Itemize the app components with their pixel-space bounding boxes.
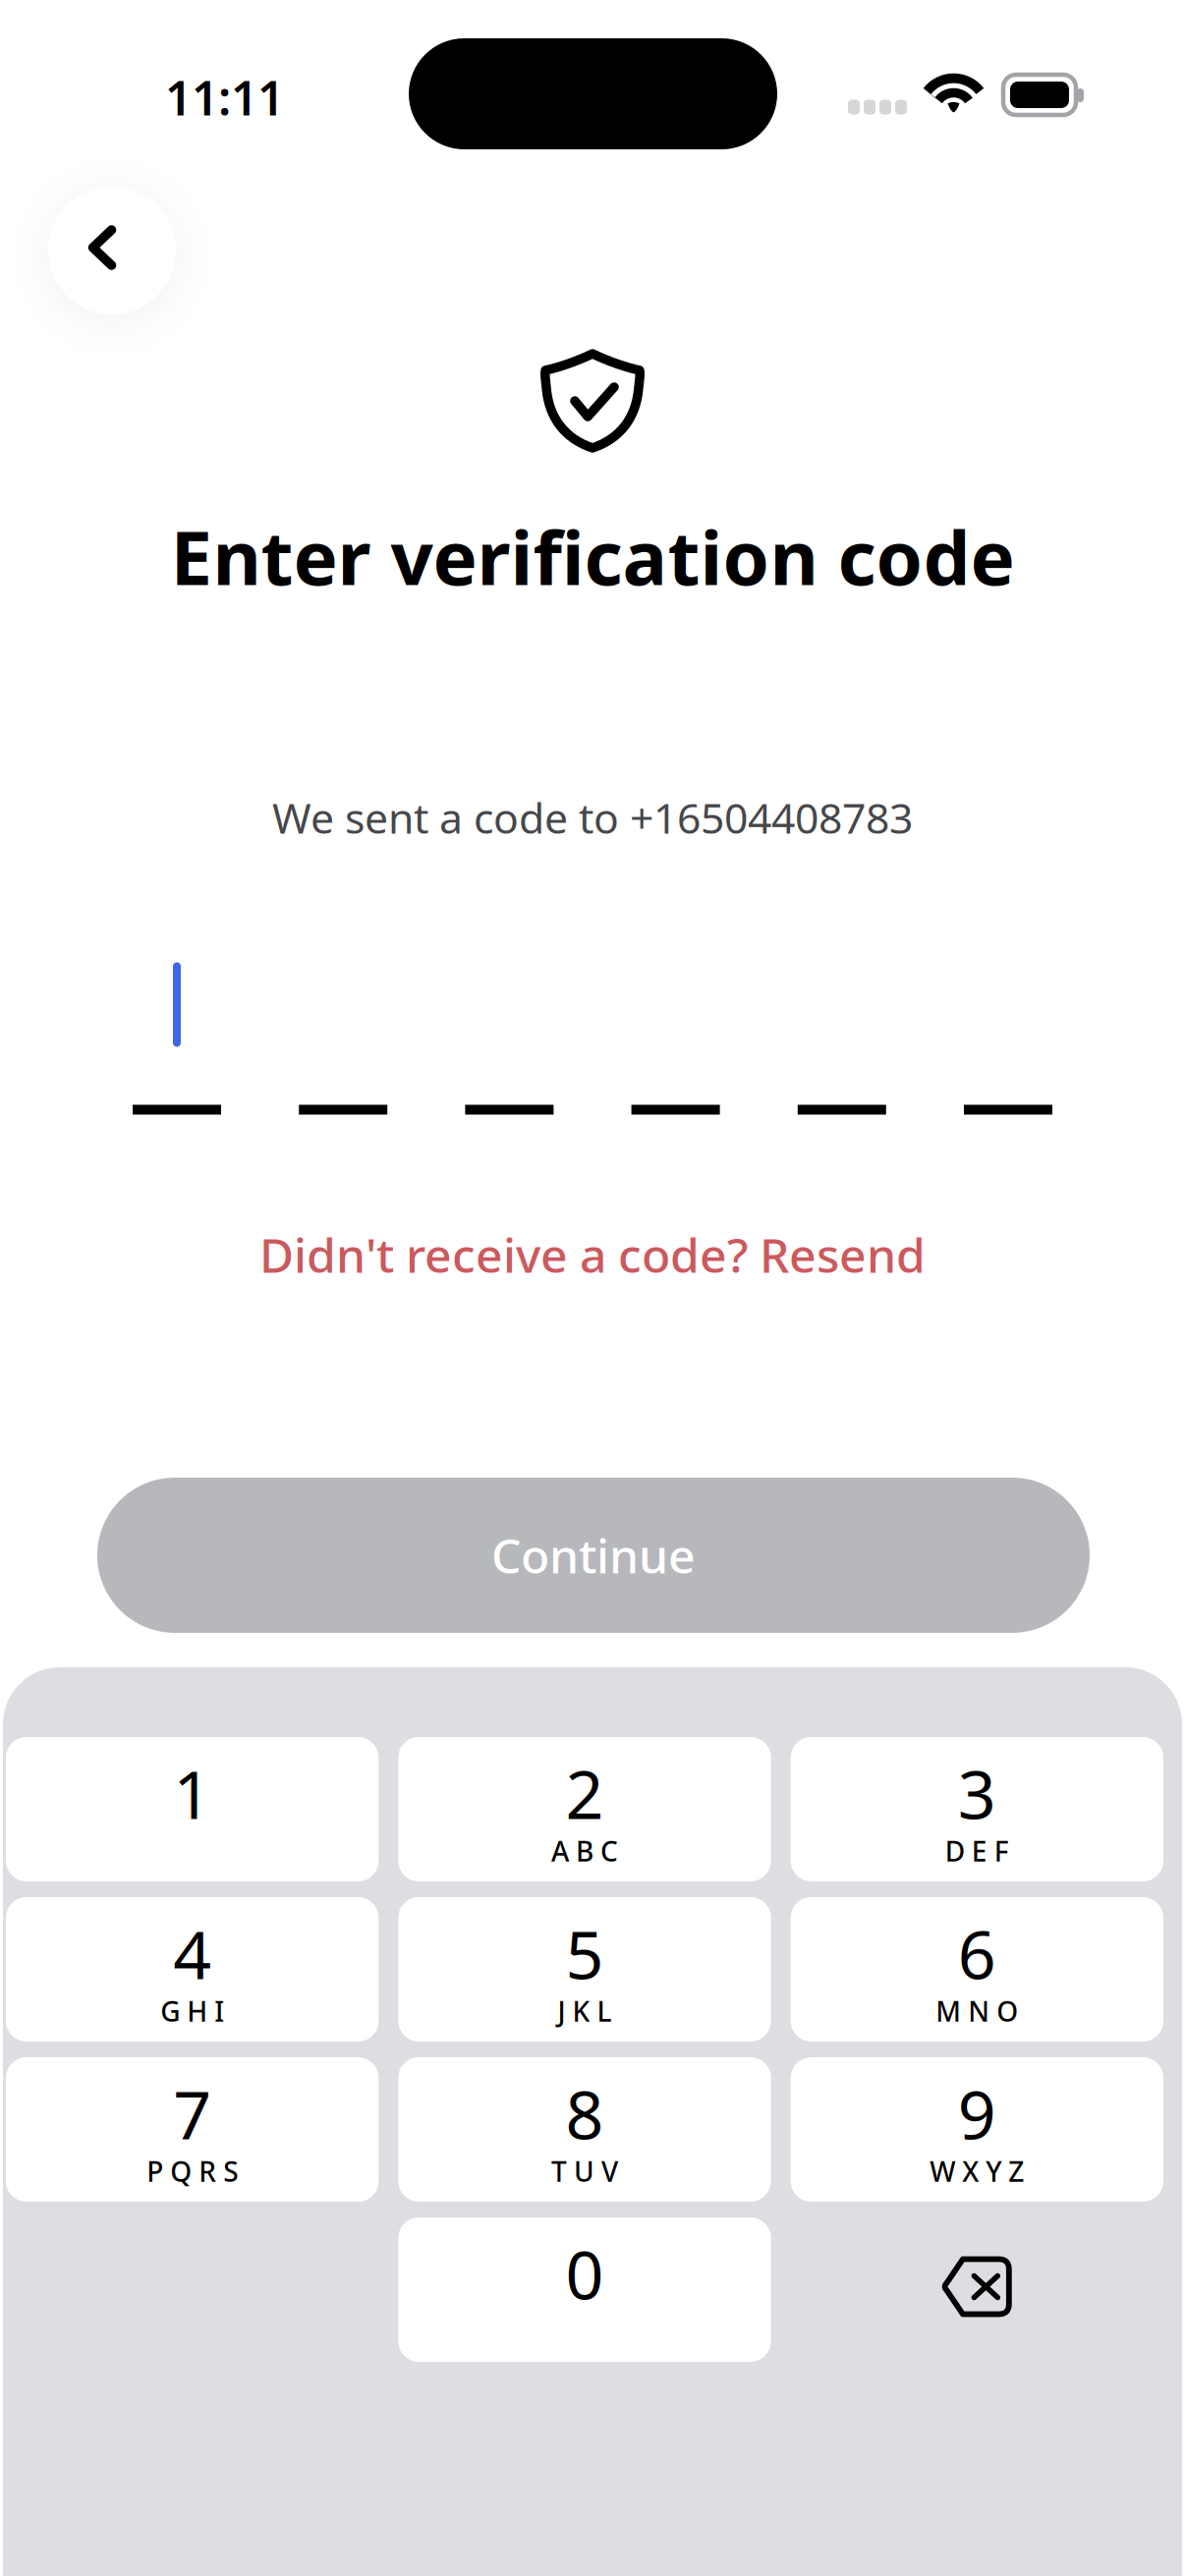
button[interactable]: 1 <box>6 1737 379 1881</box>
staticText: 2 <box>565 1749 604 1837</box>
button[interactable]: 4 <box>6 1897 379 2042</box>
button[interactable]: 7 <box>6 2057 379 2202</box>
button[interactable]: Back <box>48 187 176 314</box>
staticText: W X Y Z <box>930 2153 1024 2190</box>
staticText: Continue <box>491 1524 696 1586</box>
button[interactable]: 9 <box>791 2057 1163 2202</box>
button[interactable]: Didn't receive a code? Resend <box>250 1217 935 1292</box>
staticText: 4 <box>173 1909 211 1997</box>
staticText: 6 <box>958 1909 996 1997</box>
staticText: 9 <box>958 2069 996 2158</box>
button[interactable]: 0 <box>398 2217 771 2362</box>
button[interactable]: 2 <box>398 1737 771 1881</box>
staticText: T U V <box>551 2153 618 2190</box>
staticText: 1 <box>173 1749 211 1837</box>
staticText: 3 <box>958 1749 996 1837</box>
button[interactable]: 3 <box>791 1737 1163 1881</box>
staticText: D E F <box>945 1833 1009 1869</box>
staticText: P Q R S <box>147 2153 238 2190</box>
staticText: We sent a code to +16504408783 <box>272 790 913 845</box>
staticText: M N O <box>936 1993 1018 2029</box>
staticText: 7 <box>173 2069 211 2158</box>
button[interactable]: 5 <box>398 1897 771 2042</box>
button[interactable]: 6 <box>791 1897 1163 2042</box>
staticText: 5 <box>565 1909 604 1997</box>
staticText: 0 <box>565 2229 604 2318</box>
staticText: Enter verification code <box>170 506 1015 606</box>
staticText: J K L <box>558 1993 612 2029</box>
staticText: G H I <box>160 1993 224 2029</box>
staticText: Didn't receive a code? Resend <box>259 1223 926 1286</box>
button[interactable]: Continue <box>97 1478 1090 1633</box>
staticText: 11:11 <box>165 66 284 129</box>
button[interactable]: 8 <box>398 2057 771 2202</box>
staticText: A B C <box>551 1833 618 1869</box>
button[interactable]: Delete <box>791 2217 1163 2362</box>
staticText: 8 <box>565 2069 604 2158</box>
